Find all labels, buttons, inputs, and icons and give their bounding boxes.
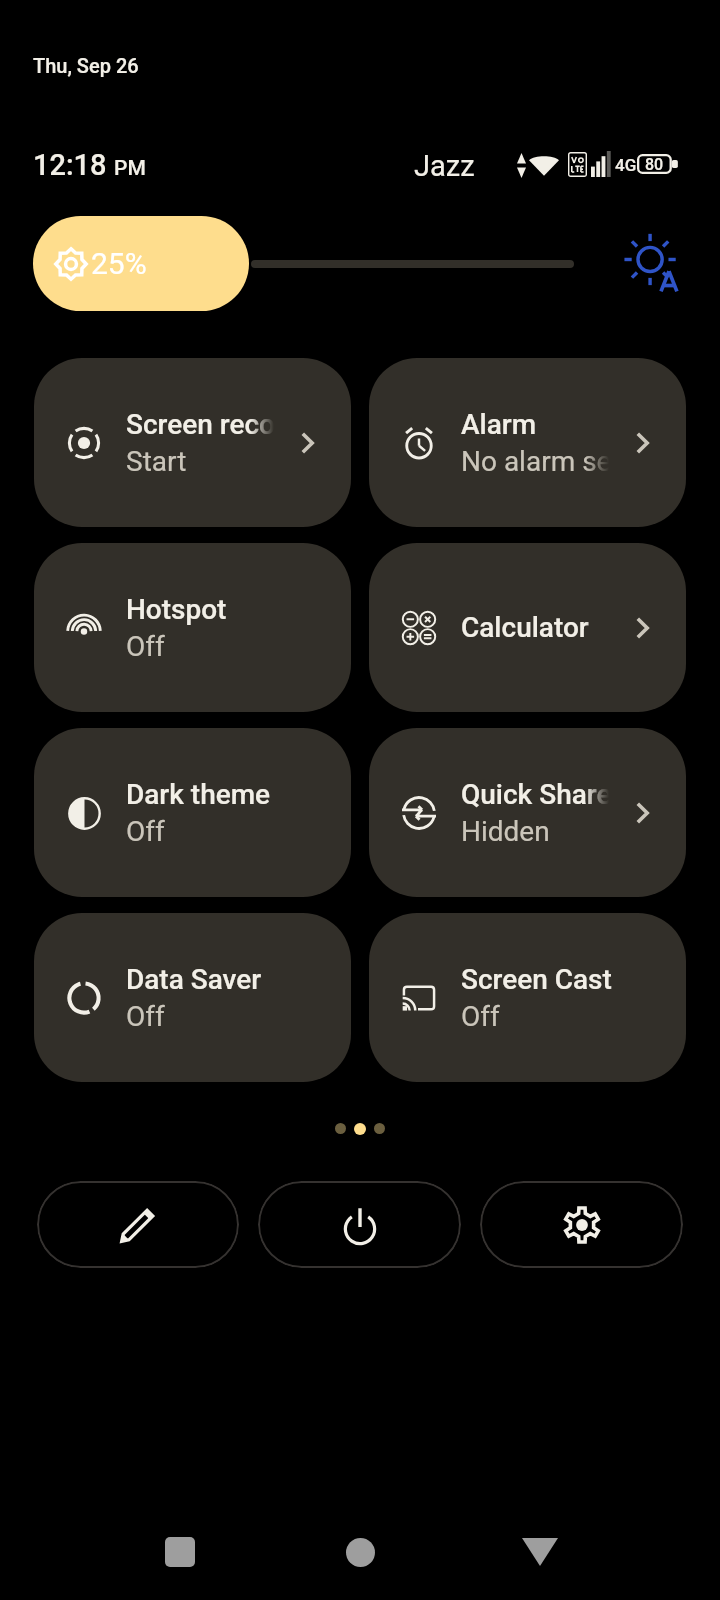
staticText: 12:18 [33, 148, 107, 182]
button[interactable]: Screen Cast [369, 913, 686, 1082]
staticText: Data Saver [126, 963, 262, 996]
button[interactable]: Home [300, 1512, 420, 1592]
button[interactable]: Settings [480, 1181, 683, 1268]
button[interactable]: Back [480, 1512, 600, 1592]
staticText: Hidden [461, 815, 550, 848]
button[interactable]: Edit [37, 1181, 239, 1268]
staticText: Start [126, 445, 187, 478]
button[interactable]: Quick Share [369, 728, 686, 897]
staticText: Off [461, 1000, 500, 1033]
staticText: Alarm [461, 408, 537, 441]
staticText: Off [126, 1000, 165, 1033]
staticText: Hotspot [126, 593, 227, 626]
staticText: 80 [645, 155, 664, 174]
staticText: Dark theme [126, 778, 271, 811]
staticText: Off [126, 815, 165, 848]
button[interactable]: Hotspot [34, 543, 351, 712]
staticText: Calculator [461, 611, 589, 644]
staticText: PM [114, 156, 146, 181]
button[interactable]: Brightness 25 percent [33, 216, 249, 311]
button[interactable]: Alarm [369, 358, 686, 527]
staticText: No alarm set [461, 445, 609, 478]
button[interactable]: Auto brightness [615, 225, 693, 303]
staticText: Screen Cast [461, 963, 612, 996]
button[interactable]: Calculator [369, 543, 686, 712]
staticText: Quick Share [461, 778, 609, 811]
staticText: Jazz [414, 149, 475, 183]
staticText: Off [126, 630, 165, 663]
staticText: Screen record [126, 408, 274, 441]
button[interactable]: Recents [120, 1512, 240, 1592]
button[interactable]: Dark theme [34, 728, 351, 897]
staticText: 4G [615, 155, 637, 175]
staticText: 25% [91, 246, 147, 281]
button[interactable]: Data Saver [34, 913, 351, 1082]
staticText: Thu, Sep 26 [33, 54, 139, 77]
button[interactable]: Screen record [34, 358, 351, 527]
button[interactable]: Power [258, 1181, 461, 1268]
